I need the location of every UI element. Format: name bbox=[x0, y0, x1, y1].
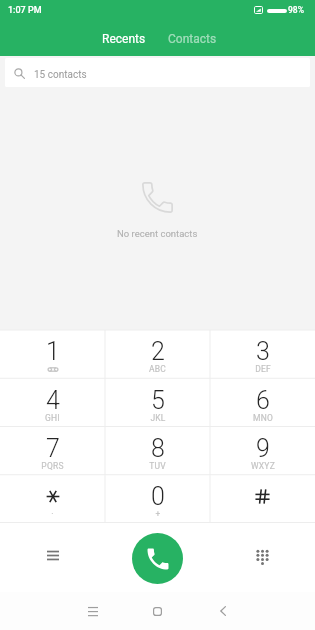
button[interactable]: 9 bbox=[210, 427, 315, 475]
staticText: MNO bbox=[253, 413, 273, 423]
staticText: PQRS bbox=[41, 461, 64, 471]
staticText: + bbox=[155, 509, 161, 519]
staticText: WXYZ bbox=[251, 461, 275, 471]
staticText: 98% bbox=[288, 5, 304, 15]
button[interactable]: Recents bbox=[91, 25, 157, 53]
button[interactable]: 6 bbox=[210, 379, 315, 427]
staticText: 9 bbox=[256, 434, 270, 463]
button[interactable]: Call bbox=[132, 533, 183, 584]
staticText: 1:07 PM bbox=[8, 5, 42, 16]
staticText: ABC bbox=[149, 364, 166, 374]
button[interactable]: 2 bbox=[105, 330, 210, 379]
staticText: Contacts bbox=[168, 32, 217, 46]
staticText: GHI bbox=[45, 413, 60, 423]
button[interactable]: 1 bbox=[0, 330, 105, 379]
staticText: TUV bbox=[149, 461, 166, 471]
button[interactable]: Contacts bbox=[157, 25, 228, 53]
button[interactable]: Menu bbox=[0, 523, 105, 592]
staticText: 1 bbox=[46, 337, 60, 366]
staticText: Recents bbox=[102, 32, 146, 46]
button[interactable]: 3 bbox=[210, 330, 315, 379]
button[interactable]: Recents bbox=[72, 592, 113, 630]
staticText: 3 bbox=[256, 337, 270, 366]
button[interactable]: 15 contacts bbox=[5, 58, 310, 87]
button[interactable]: Home bbox=[113, 592, 202, 630]
staticText: No recent contacts bbox=[117, 228, 198, 239]
staticText: JKL bbox=[150, 413, 166, 423]
button[interactable]: · bbox=[0, 475, 105, 523]
button[interactable]: 5 bbox=[105, 379, 210, 427]
button[interactable]: 7 bbox=[0, 427, 105, 475]
button[interactable]: 8 bbox=[105, 427, 210, 475]
staticText: 7 bbox=[46, 434, 60, 463]
staticText: 15 contacts bbox=[34, 69, 87, 81]
staticText: 6 bbox=[256, 386, 270, 415]
staticText: DEF bbox=[255, 364, 271, 374]
button[interactable] bbox=[210, 475, 315, 523]
staticText: 8 bbox=[151, 434, 165, 463]
staticText: 2 bbox=[151, 337, 165, 366]
staticText: 5 bbox=[151, 386, 165, 415]
button[interactable]: Back bbox=[202, 592, 243, 630]
staticText: · bbox=[51, 509, 54, 519]
button[interactable]: 4 bbox=[0, 379, 105, 427]
staticText: 4 bbox=[46, 386, 60, 415]
button[interactable]: Dialpad bbox=[210, 523, 315, 592]
staticText: 0 bbox=[151, 482, 165, 511]
button[interactable]: 0 bbox=[105, 475, 210, 523]
